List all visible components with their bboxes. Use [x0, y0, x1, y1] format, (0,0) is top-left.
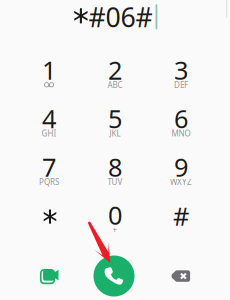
button[interactable]: 6 [150, 102, 212, 148]
button[interactable]: Star [19, 194, 81, 240]
button[interactable]: Delete [156, 256, 206, 296]
staticText: 7 [42, 150, 56, 184]
staticText: # [173, 199, 189, 233]
button[interactable]: Video call [25, 256, 75, 296]
button[interactable]: 8 [84, 150, 146, 196]
staticText: 3 [174, 53, 188, 87]
button[interactable]: 3 [150, 53, 212, 99]
staticText: TUV [107, 176, 122, 187]
staticText: GHI [41, 128, 56, 139]
staticText: ABC [107, 79, 122, 90]
button[interactable]: 1 voicemail [18, 53, 80, 99]
staticText: 5 [108, 101, 122, 135]
button[interactable]: 0 [84, 198, 146, 244]
staticText: JKL [109, 128, 120, 139]
staticText: 2 [108, 53, 122, 87]
staticText: 6 [174, 101, 188, 135]
button[interactable]: 5 [84, 102, 146, 148]
staticText: PQRS [39, 176, 59, 187]
button[interactable]: Call [89, 253, 139, 299]
staticText: MNO [171, 128, 190, 139]
button[interactable]: 4 [18, 102, 80, 148]
button[interactable]: 2 [84, 53, 146, 99]
button[interactable]: 7 [18, 150, 80, 196]
button[interactable]: Pound [150, 193, 212, 239]
staticText: 1 [42, 53, 56, 87]
staticText: WXYZ [170, 176, 192, 187]
staticText: 9 [174, 150, 188, 184]
staticText: 0 [108, 198, 122, 232]
staticText: #06# [89, 0, 153, 34]
staticText: + [112, 224, 117, 235]
button[interactable]: 9 [150, 150, 212, 196]
staticText: 4 [42, 101, 56, 135]
staticText: DEF [174, 79, 188, 90]
staticText: 8 [108, 150, 122, 184]
